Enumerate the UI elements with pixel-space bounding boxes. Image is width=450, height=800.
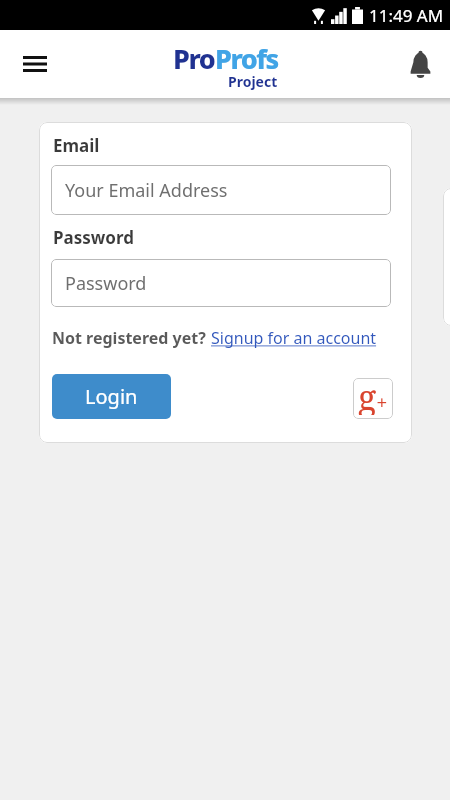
button[interactable] (16, 45, 54, 83)
staticText: Your Email Address (65, 178, 228, 203)
staticText: Profs (215, 40, 278, 77)
button[interactable]: Password (51, 259, 391, 307)
button[interactable]: Your Email Address (51, 165, 391, 215)
button[interactable] (402, 45, 438, 83)
button[interactable]: Signup for an account (211, 327, 377, 349)
staticText: Email (53, 134, 100, 157)
staticText: Not registered yet? (52, 327, 211, 349)
staticText: Password (65, 271, 147, 296)
button[interactable]: Login (52, 374, 171, 419)
staticText: 11:49 AM (369, 4, 444, 27)
staticText: Pro (173, 40, 215, 77)
staticText: Password (53, 226, 134, 249)
staticText: Project (228, 72, 278, 91)
button[interactable]: g+ (353, 378, 393, 419)
staticText: g+ (358, 378, 388, 415)
staticText: Login (85, 383, 138, 410)
